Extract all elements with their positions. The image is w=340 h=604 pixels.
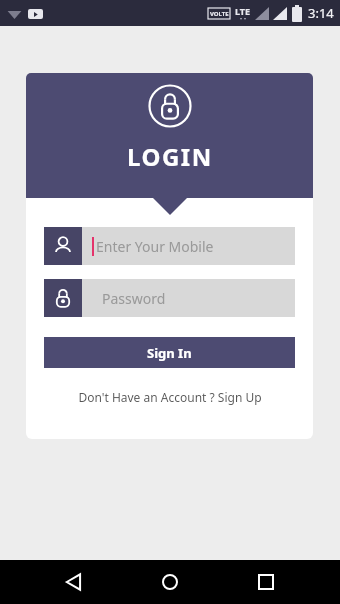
staticText: Sign In	[147, 344, 192, 362]
button[interactable]: Don't Have an Account ? Sign Up	[44, 389, 295, 405]
button[interactable]: Password	[44, 279, 295, 317]
staticText: LOGIN	[127, 140, 213, 173]
staticText: Don't Have an Account ? Sign Up	[78, 389, 262, 405]
other: Mobile number	[52, 235, 74, 257]
button[interactable]: Home	[148, 560, 192, 604]
staticText: 3:14	[308, 4, 334, 22]
staticText: VOLTE	[210, 10, 229, 18]
button[interactable]: Mobile number	[44, 227, 295, 265]
staticText: Password	[102, 289, 166, 308]
other: Password	[53, 288, 73, 308]
staticText: Enter Your Mobile	[96, 237, 214, 256]
button[interactable]: Recent apps	[244, 560, 288, 604]
button[interactable]: Back	[52, 560, 96, 604]
button[interactable]: Sign In	[44, 337, 295, 368]
staticText: LTE	[235, 5, 251, 17]
